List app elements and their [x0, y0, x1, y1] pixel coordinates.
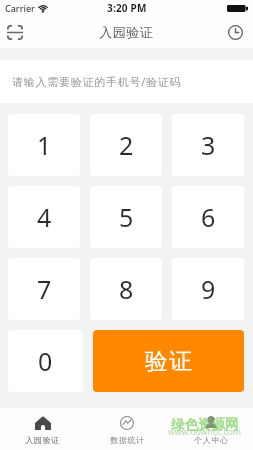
button[interactable]: 6 [172, 186, 244, 248]
button[interactable]: 5 [90, 186, 162, 248]
staticText: 3 [201, 128, 216, 162]
staticText: 0 [38, 344, 53, 378]
button[interactable]: 验证 [93, 330, 244, 392]
staticText: 6 [201, 200, 216, 234]
staticText: 数据统计 [110, 435, 145, 445]
staticText: 入园验证 [99, 24, 153, 40]
button[interactable]: 9 [172, 258, 244, 320]
staticText: 8 [119, 272, 134, 306]
button[interactable]: 7 [8, 258, 80, 320]
staticText: 绿色资源网 [171, 416, 239, 433]
button[interactable]: History [222, 19, 248, 45]
button[interactable]: 8 [90, 258, 162, 320]
staticText: 5 [119, 200, 134, 234]
staticText: 4 [37, 200, 52, 234]
button[interactable]: Scan QR code [2, 19, 28, 45]
staticText: 2 [119, 128, 134, 162]
staticText: 9 [201, 272, 216, 306]
staticText: 验证 [144, 347, 193, 376]
staticText: 个人中心 [194, 435, 229, 445]
staticText: 请输入需要验证的手机号/验证码 [12, 74, 182, 89]
button[interactable]: 入园验证 [0, 408, 85, 450]
staticText: 3:20 PM [107, 1, 147, 15]
button[interactable]: 2 [90, 114, 162, 176]
staticText: Carrier [5, 2, 35, 14]
staticText: www.downcc.com [168, 426, 242, 438]
button[interactable]: 数据统计 [85, 408, 169, 450]
staticText: 7 [37, 272, 52, 306]
button[interactable]: 0 [8, 330, 83, 392]
staticText: 1 [37, 128, 52, 162]
button[interactable]: 个人中心 [169, 408, 253, 450]
button[interactable]: 3 [172, 114, 244, 176]
button[interactable]: 1 [8, 114, 80, 176]
button[interactable]: 4 [8, 186, 80, 248]
staticText: 入园验证 [25, 435, 60, 445]
